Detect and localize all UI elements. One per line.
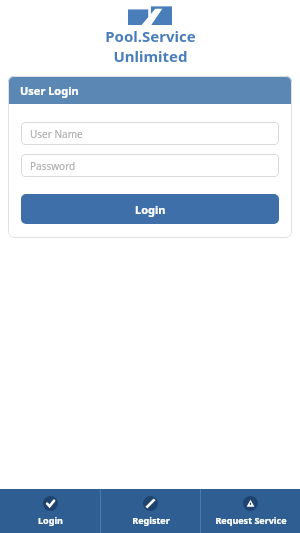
button[interactable]: User Name xyxy=(21,122,279,145)
staticText: Unlimited xyxy=(113,46,188,66)
staticText: Password xyxy=(30,159,76,173)
staticText: User Name xyxy=(30,127,83,141)
staticText: Request Service xyxy=(215,514,287,526)
button[interactable]: Register xyxy=(101,489,200,533)
button[interactable]: Request Service xyxy=(201,489,300,533)
button[interactable]: Password xyxy=(21,154,279,177)
staticText: Pool.Service xyxy=(105,26,196,46)
button[interactable]: Login xyxy=(0,489,100,533)
staticText: Register xyxy=(132,514,170,526)
staticText: Login xyxy=(38,514,63,526)
button[interactable]: Login xyxy=(21,194,279,224)
staticText: Login xyxy=(135,202,166,217)
staticText: User Login xyxy=(20,83,79,98)
